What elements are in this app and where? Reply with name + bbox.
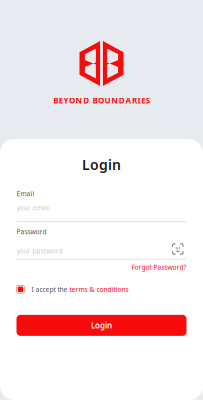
staticText: Login bbox=[91, 320, 112, 331]
staticText: your password bbox=[16, 246, 62, 256]
staticText: your email bbox=[16, 203, 50, 212]
button[interactable]: Login bbox=[16, 315, 186, 336]
staticText: Login bbox=[82, 155, 121, 174]
staticText: terms & conditions bbox=[69, 285, 128, 294]
staticText: Forgot Password? bbox=[131, 263, 186, 272]
button[interactable]: I accept the bbox=[16, 285, 186, 294]
button[interactable]: Forgot Password? bbox=[16, 263, 186, 272]
staticText: I accept the bbox=[31, 285, 69, 294]
staticText: Email bbox=[16, 189, 34, 198]
staticText: Password bbox=[16, 227, 46, 236]
button[interactable]: Sign in with Face ID bbox=[172, 245, 186, 257]
staticText: BEYOND BOUNDARIES bbox=[53, 95, 150, 106]
